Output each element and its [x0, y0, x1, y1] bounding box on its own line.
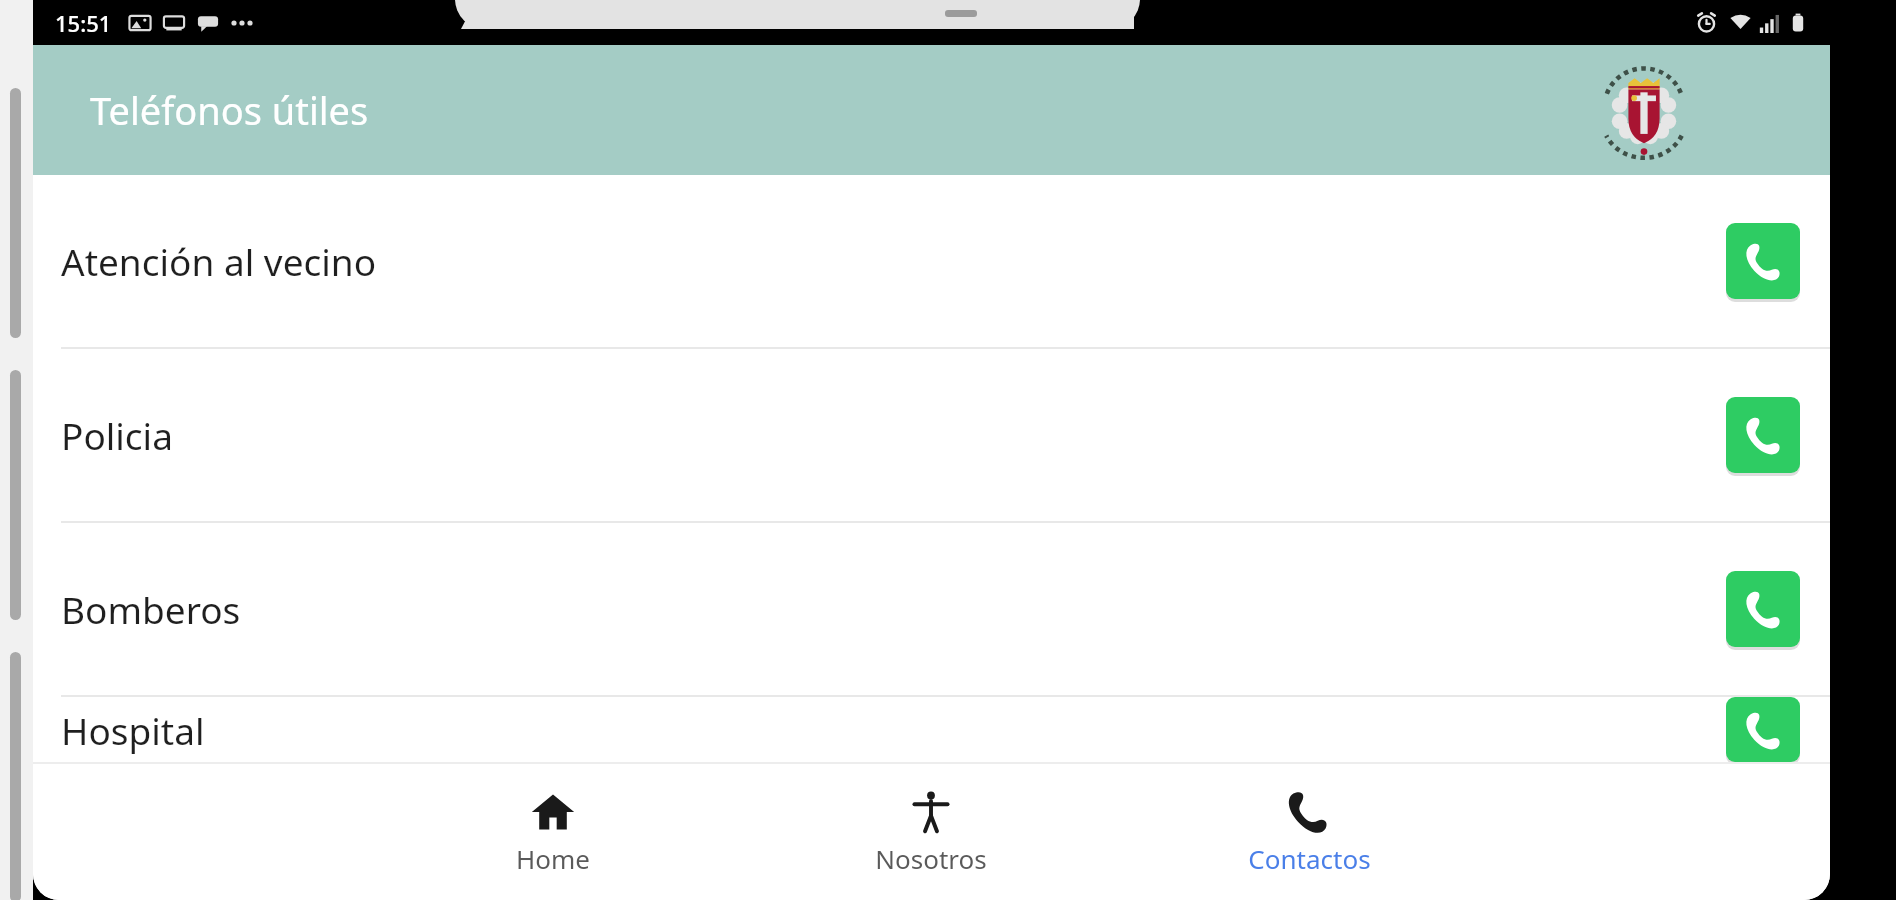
button[interactable]: Home	[438, 764, 668, 900]
button[interactable]: Bomberos	[33, 523, 1830, 695]
staticText: Atención al vecino	[61, 236, 1724, 286]
staticText: Hospital	[61, 705, 1724, 755]
button[interactable]: Llamar a Bomberos	[1724, 569, 1802, 649]
button[interactable]: Hospital	[33, 697, 1830, 762]
button[interactable]: Atención al vecino	[33, 175, 1830, 347]
button[interactable]: Policia	[33, 349, 1830, 521]
staticText: Policia	[61, 410, 1724, 460]
button[interactable]: Escudo municipal	[1592, 58, 1696, 162]
button[interactable]: Nosotros	[816, 764, 1046, 900]
button[interactable]: Llamar a Atención al vecino	[1724, 221, 1802, 301]
staticText: Bomberos	[61, 584, 1724, 634]
staticText: Nosotros	[875, 841, 987, 876]
button[interactable]: Llamar a Policia	[1724, 395, 1802, 475]
staticText: Home	[516, 841, 590, 876]
staticText: Contactos	[1248, 841, 1371, 876]
button[interactable]: Llamar a Hospital	[1724, 697, 1802, 762]
staticText: 15:51	[55, 8, 112, 38]
staticText: Teléfonos útiles	[90, 84, 369, 136]
button[interactable]: Contactos	[1194, 764, 1424, 900]
